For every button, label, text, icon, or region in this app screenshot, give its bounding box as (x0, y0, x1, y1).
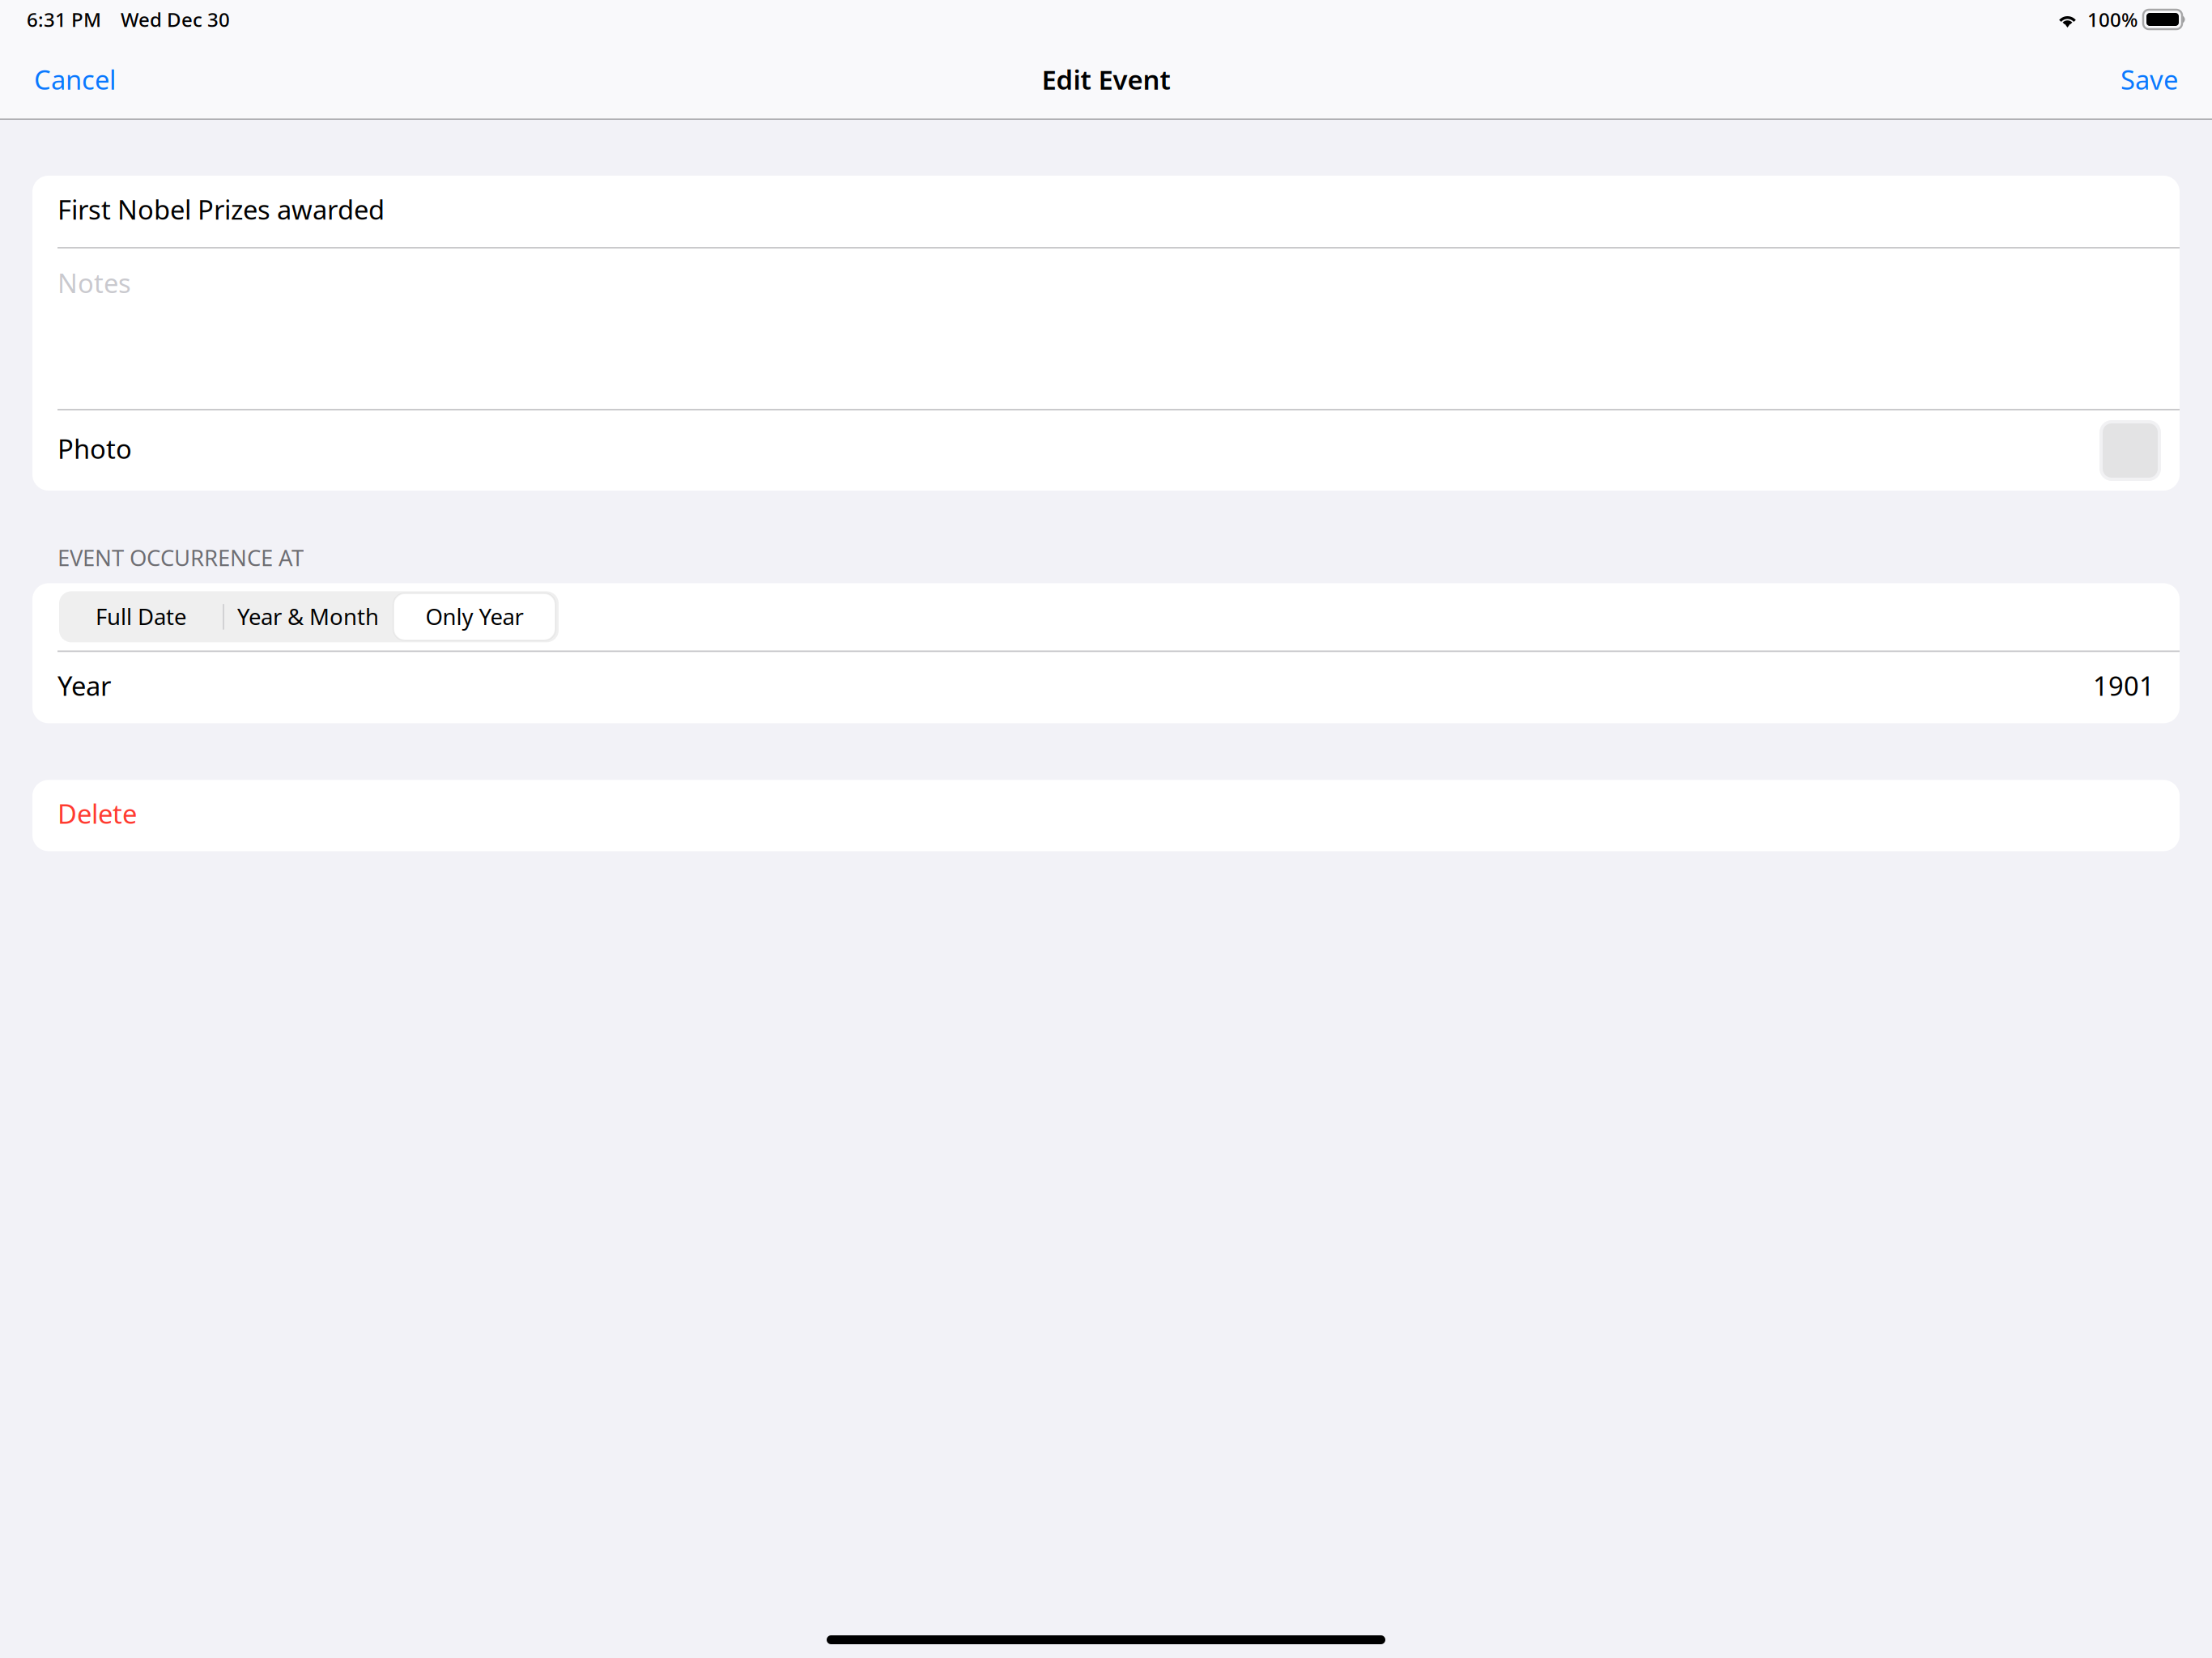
button[interactable]: Delete (0, 780, 2212, 851)
button[interactable]: Year (32, 652, 2180, 723)
staticText: 1901 (2093, 668, 2155, 704)
button[interactable]: Only Year (393, 593, 555, 640)
staticText: Delete (57, 796, 137, 832)
button[interactable]: Save (2087, 50, 2212, 120)
button[interactable]: Photo (32, 410, 2180, 491)
staticText: 100% (2087, 7, 2138, 32)
staticText: Only Year (425, 601, 523, 632)
staticText: Full Date (96, 601, 186, 632)
button[interactable]: Full Date (59, 591, 223, 642)
staticText: First Nobel Prizes awarded (57, 191, 385, 227)
staticText: Photo (57, 431, 132, 467)
button[interactable]: Cancel (0, 50, 150, 120)
staticText: 6:31 PM (27, 7, 101, 32)
staticText: Save (2121, 61, 2178, 97)
staticText: Notes (57, 265, 131, 301)
staticText: Year (57, 668, 111, 704)
button[interactable]: Year & Month (223, 591, 393, 642)
staticText: Year & Month (237, 601, 379, 632)
button[interactable]: First Nobel Prizes awarded (32, 176, 2180, 247)
staticText: Cancel (34, 61, 116, 97)
staticText: EVENT OCCURRENCE AT (57, 542, 304, 573)
staticText: Wed Dec 30 (121, 7, 230, 32)
staticText: Edit Event (1042, 61, 1170, 97)
